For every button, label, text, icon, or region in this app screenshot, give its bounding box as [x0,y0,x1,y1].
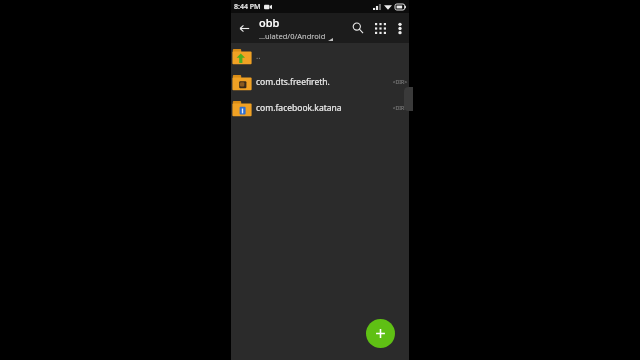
staticText: ...ulated/0/Android [259,31,326,41]
staticText: obb [259,15,280,30]
button[interactable]: More options [391,13,409,43]
staticText: com.facebook.katana [256,102,392,114]
button[interactable]: com.facebook.katana [231,95,409,121]
button[interactable]: Add [366,319,395,348]
button[interactable]: Back [231,15,257,41]
staticText: 8:44 PM [234,2,261,12]
button[interactable]: com.dts.freefireth. [231,69,409,95]
staticText: com.dts.freefireth. [256,76,392,88]
staticText: <DIR> [392,105,407,112]
button[interactable]: Grid view [369,13,391,43]
staticText: <DIR> [392,79,407,86]
button[interactable]: Search [347,13,369,43]
button[interactable]: obb [259,15,347,41]
button[interactable]: .. [231,43,409,69]
